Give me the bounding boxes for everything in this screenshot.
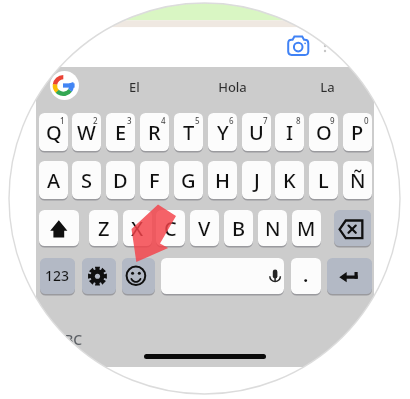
button[interactable]: Y (208, 113, 237, 151)
button[interactable]: T (174, 113, 203, 151)
staticText: M (297, 215, 316, 242)
button[interactable]: Q (39, 113, 68, 151)
button[interactable]: Settings (82, 258, 116, 294)
staticText: Q (46, 119, 62, 146)
button[interactable]: N (258, 210, 287, 246)
staticText: 0 (364, 115, 369, 126)
staticText: ABC (55, 330, 83, 349)
button[interactable]: D (106, 161, 135, 199)
staticText: R (148, 119, 161, 146)
button[interactable]: O (309, 113, 338, 151)
staticText: I (286, 119, 294, 146)
staticText: 4 (161, 115, 166, 126)
staticText: 7 (263, 115, 268, 126)
staticText: Z (98, 215, 110, 242)
staticText: D (113, 167, 128, 194)
button[interactable]: A (39, 161, 68, 199)
button[interactable]: V (190, 210, 219, 246)
button[interactable]: E (106, 113, 135, 151)
staticText: 2 (93, 115, 98, 126)
staticText: T (183, 119, 195, 146)
button[interactable]: K (275, 161, 304, 199)
button[interactable]: C (156, 210, 185, 246)
button[interactable]: R (140, 113, 169, 151)
button[interactable]: G (174, 161, 203, 199)
button[interactable]: X (123, 210, 152, 246)
staticText: 6 (229, 115, 234, 126)
staticText: 8 (296, 115, 301, 126)
staticText: 3 (127, 115, 132, 126)
button[interactable]: L (309, 161, 338, 199)
staticText: X (131, 215, 144, 242)
staticText: B (232, 215, 246, 242)
staticText: La (320, 78, 335, 96)
button[interactable]: Period (291, 258, 321, 294)
staticText: H (215, 167, 230, 194)
button[interactable]: 123 (40, 258, 75, 294)
staticText: O (316, 119, 332, 146)
button[interactable]: Z (89, 210, 118, 246)
staticText: K (283, 167, 296, 194)
button[interactable]: Enter (327, 258, 372, 294)
staticText: U (249, 119, 264, 146)
staticText: F (149, 167, 160, 194)
staticText: E (115, 119, 127, 146)
staticText: 9 (330, 115, 335, 126)
staticText: S (81, 167, 92, 194)
staticText: J (254, 167, 260, 194)
button[interactable]: Space (161, 258, 284, 294)
staticText: P (351, 119, 364, 146)
staticText: N (265, 215, 281, 242)
staticText: Hola (218, 78, 247, 96)
button[interactable]: F (140, 161, 169, 199)
button[interactable]: W (72, 113, 101, 151)
button[interactable]: Shift (39, 210, 79, 246)
staticText: Y (217, 119, 229, 146)
button[interactable]: More options (320, 38, 330, 54)
button[interactable]: La (292, 77, 362, 97)
button[interactable]: H (208, 161, 237, 199)
staticText: L (318, 167, 329, 194)
staticText: A (47, 167, 61, 194)
staticText: 123 (45, 266, 70, 285)
staticText: V (198, 215, 211, 242)
staticText: C (164, 215, 177, 242)
button[interactable]: Google (50, 71, 79, 100)
staticText: G (181, 167, 196, 194)
button[interactable]: J (242, 161, 271, 199)
button[interactable]: I (275, 113, 304, 151)
button[interactable]: S (72, 161, 101, 199)
button[interactable]: Backspace (334, 210, 371, 246)
staticText: W (77, 119, 96, 146)
button[interactable]: Hola (197, 77, 267, 97)
button[interactable]: Emoji (122, 258, 155, 294)
button[interactable]: Camera (286, 35, 310, 56)
staticText: 5 (195, 115, 200, 126)
staticText: El (129, 78, 140, 96)
button[interactable]: B (224, 210, 253, 246)
button[interactable]: Ñ (343, 161, 372, 199)
button[interactable]: El (99, 77, 169, 97)
button[interactable]: U (242, 113, 271, 151)
button[interactable]: P (343, 113, 372, 151)
staticText: 1 (60, 115, 65, 126)
button[interactable]: M (292, 210, 321, 246)
staticText: Ñ (350, 167, 366, 194)
